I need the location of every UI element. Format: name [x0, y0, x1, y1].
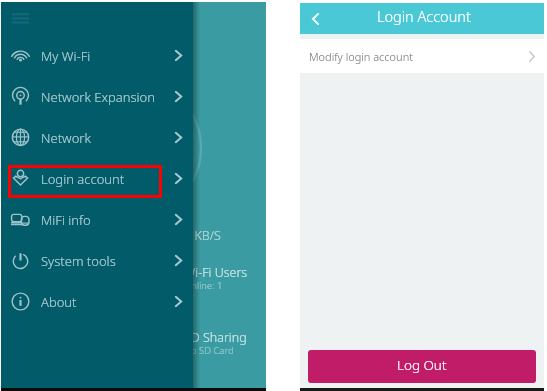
button[interactable]: Back — [300, 3, 330, 34]
staticText: Login account — [41, 170, 125, 188]
staticText: Network — [41, 129, 91, 147]
staticText: SD Sharing — [184, 329, 247, 346]
button[interactable]: Network — [1, 117, 193, 158]
button[interactable]: My Wi-Fi — [1, 35, 193, 76]
staticText: About — [41, 293, 77, 311]
button[interactable]: Log Out — [308, 350, 536, 383]
staticText: GB used — [109, 170, 148, 184]
staticText: Modify login account — [309, 49, 413, 64]
staticText: No SD Card — [184, 344, 234, 357]
button[interactable]: Network Expansion — [1, 76, 193, 117]
staticText: Wi-Fi Users — [184, 264, 248, 281]
button[interactable]: MiFi info — [1, 199, 193, 240]
button[interactable]: System tools — [1, 240, 193, 281]
button[interactable]: About — [1, 281, 193, 322]
staticText: System tools — [41, 252, 116, 270]
button[interactable]: Menu — [9, 8, 31, 28]
staticText: Network Expansion — [41, 88, 155, 106]
staticText: My Wi-Fi — [41, 47, 91, 65]
staticText: MiFi info — [41, 211, 91, 229]
staticText: Online: 1 — [184, 279, 223, 292]
button[interactable]: Login account — [1, 158, 193, 199]
staticText: 10.413 — [64, 130, 161, 172]
staticText: 0 KB/S — [184, 227, 221, 244]
button[interactable]: Modify login account — [300, 39, 544, 73]
staticText: Login Account — [377, 6, 471, 26]
staticText: Log Out — [397, 356, 447, 374]
